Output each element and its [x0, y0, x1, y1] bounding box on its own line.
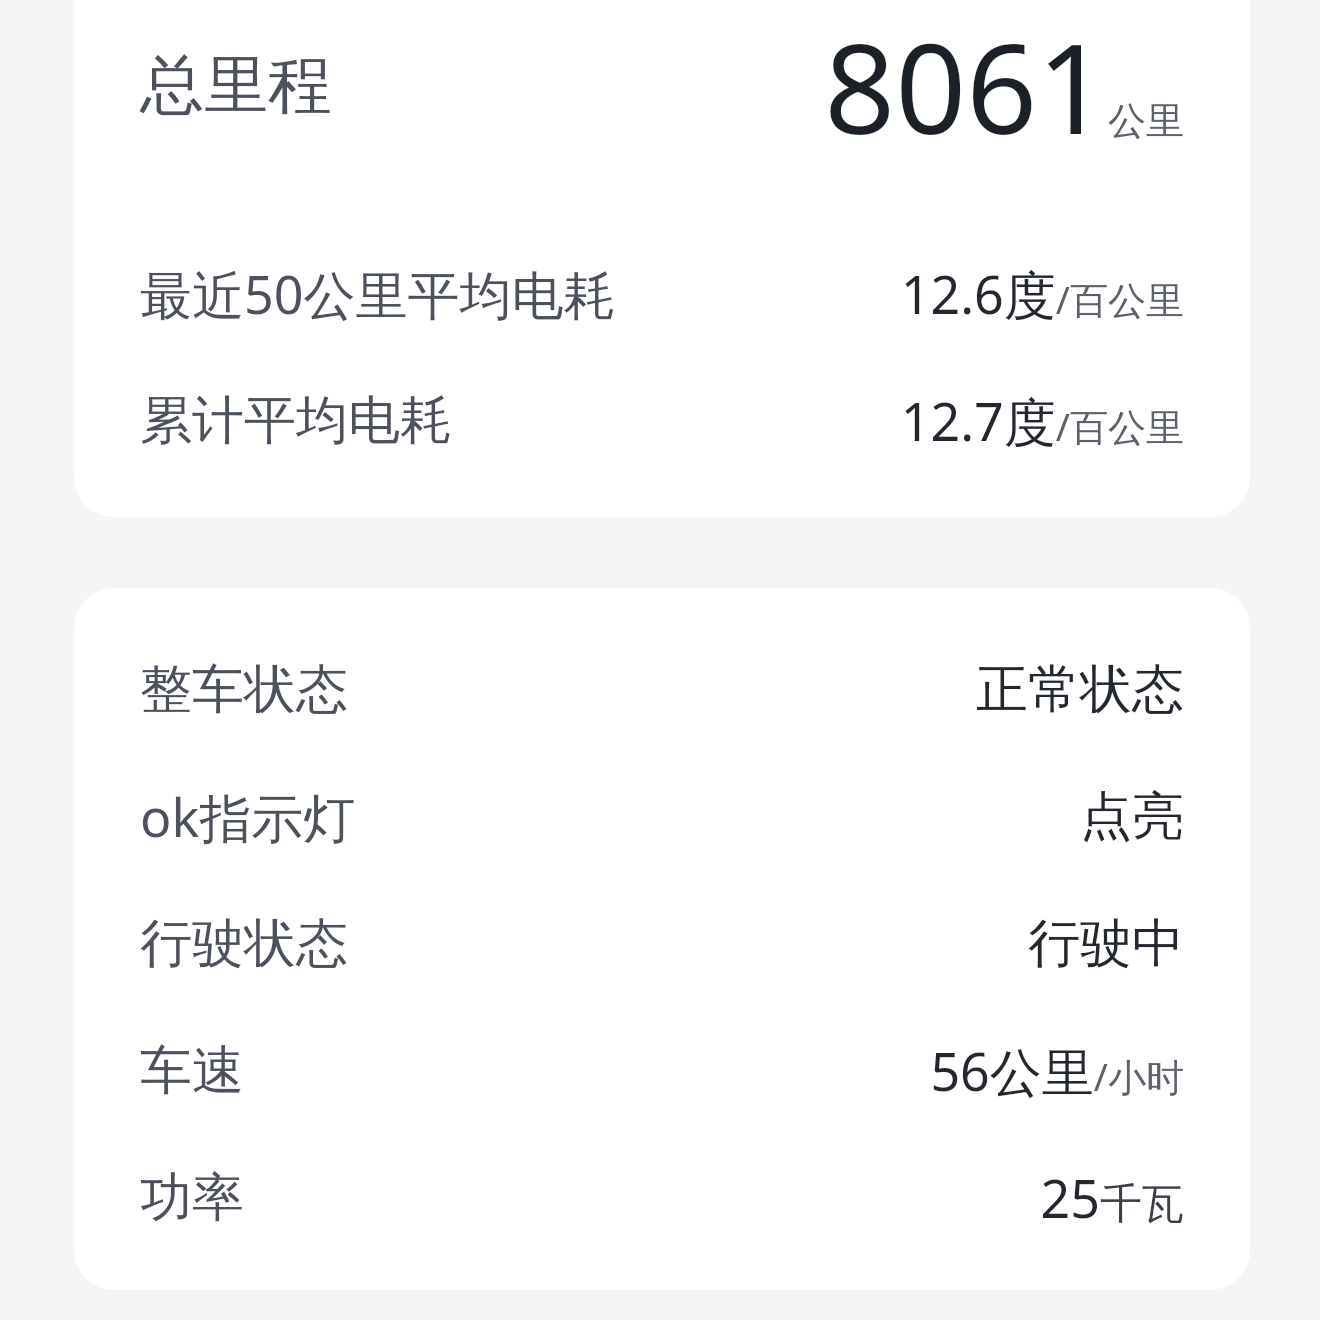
staticText: 车速	[140, 1038, 244, 1104]
button[interactable]: 整车状态	[74, 626, 1250, 753]
button[interactable]: 总里程	[74, 0, 1250, 230]
staticText: 12.7度/百公里	[900, 385, 1184, 456]
staticText: 累计平均电耗	[140, 388, 452, 454]
staticText: 最近50公里平均电耗	[140, 258, 616, 329]
staticText: 正常状态	[976, 657, 1184, 723]
staticText: 整车状态	[140, 657, 348, 723]
button[interactable]: ok指示灯	[74, 753, 1250, 880]
button[interactable]: 功率	[74, 1134, 1250, 1261]
staticText: 12.6度/百公里	[900, 258, 1184, 329]
staticText: 点亮	[1080, 784, 1184, 850]
button[interactable]: 车速	[74, 1007, 1250, 1134]
staticText: 行驶状态	[140, 911, 348, 977]
button[interactable]: 最近50公里平均电耗	[74, 230, 1250, 357]
staticText: 56公里/小时	[930, 1035, 1184, 1106]
staticText: 8061公里	[824, 1, 1184, 170]
staticText: 功率	[140, 1165, 244, 1231]
button[interactable]: 行驶状态	[74, 880, 1250, 1007]
staticText: 25千瓦	[1040, 1162, 1184, 1233]
button[interactable]: 累计平均电耗	[74, 357, 1250, 484]
staticText: 行驶中	[1028, 911, 1184, 977]
staticText: 总里程	[140, 45, 332, 126]
staticText: ok指示灯	[140, 781, 356, 852]
